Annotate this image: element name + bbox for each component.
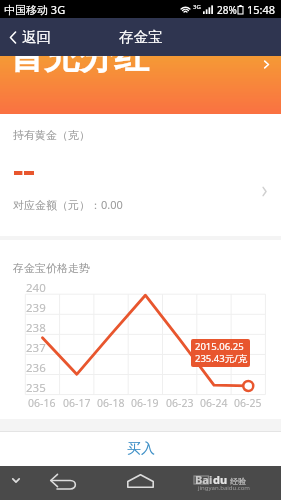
staticText: 06-25: [234, 396, 262, 410]
staticText: 对应金额（元）：0.00: [13, 197, 123, 212]
staticText: 06-24: [200, 396, 228, 410]
staticText: 2015.06.25: [195, 340, 244, 353]
staticText: 235.43元/克: [195, 352, 248, 365]
staticText: jingyan.baidu.com: [198, 484, 250, 492]
staticText: 中国移动 3G: [4, 2, 66, 17]
button[interactable]: Back: [47, 468, 80, 498]
staticText: 存金宝价格走势: [13, 261, 90, 275]
staticText: 237: [26, 340, 46, 356]
staticText: 240: [26, 280, 46, 296]
button[interactable]: Home: [124, 468, 157, 498]
staticText: 持有黄金（克）: [13, 128, 90, 142]
staticText: 存金宝: [119, 28, 163, 46]
staticText: 235: [26, 380, 46, 396]
button[interactable]: 买入: [0, 431, 281, 466]
staticText: 06-16: [28, 396, 56, 410]
staticText: Bai: [195, 472, 213, 487]
button[interactable]: 返回: [0, 20, 61, 54]
staticText: 3G: [193, 3, 201, 11]
staticText: du: [213, 472, 228, 487]
other: More: [262, 60, 271, 69]
staticText: 经验: [230, 476, 246, 486]
button[interactable]: Hide keyboard: [2, 468, 30, 498]
button[interactable]: [0, 182, 281, 236]
button[interactable]: [0, 114, 281, 182]
staticText: 返回: [22, 28, 51, 46]
button[interactable]: 首充分红: [0, 56, 281, 114]
other: Details: [261, 186, 268, 197]
staticText: 239: [26, 300, 46, 316]
staticText: 06-18: [97, 396, 125, 410]
staticText: 06-23: [166, 396, 194, 410]
staticText: 28%: [217, 3, 237, 17]
staticText: 236: [26, 360, 46, 376]
staticText: 06-19: [131, 396, 159, 410]
staticText: 首充分红: [9, 56, 149, 78]
staticText: 06-17: [63, 396, 91, 410]
staticText: 15:48: [247, 2, 276, 17]
staticText: 238: [26, 320, 46, 336]
staticText: 买入: [127, 440, 155, 458]
